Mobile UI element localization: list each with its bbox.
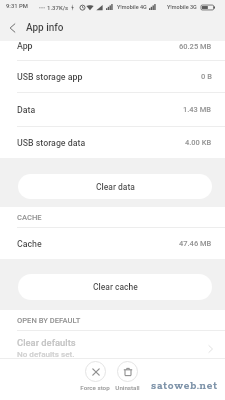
button[interactable]: Clear cache xyxy=(18,274,212,300)
staticText: USB storage data xyxy=(17,138,86,148)
staticText: USB storage app xyxy=(17,72,83,82)
staticText: Data xyxy=(17,105,36,115)
staticText: Cache xyxy=(17,239,42,249)
button[interactable]: USB storage app xyxy=(0,61,225,92)
button[interactable]: Cache xyxy=(0,228,225,259)
button[interactable]: Clear defaults xyxy=(0,331,225,358)
staticText: 4.00 KB xyxy=(185,138,212,147)
staticText: CACHE xyxy=(17,213,42,222)
button[interactable]: Data xyxy=(0,93,225,126)
button[interactable]: Uninstall xyxy=(107,361,147,391)
button[interactable]: App xyxy=(0,41,225,60)
button[interactable]: USB storage data xyxy=(0,127,225,158)
staticText: Clear data xyxy=(96,182,135,192)
staticText: 47.46 MB xyxy=(179,239,212,248)
staticText: Clear defaults xyxy=(17,337,76,348)
staticText: 9:31 PM xyxy=(6,3,28,10)
staticText: satoweb.net xyxy=(151,380,218,393)
staticText: App xyxy=(17,41,33,51)
staticText: Force stop xyxy=(80,384,110,391)
staticText: 1.37K/s xyxy=(47,4,69,11)
button[interactable]: Force stop xyxy=(75,361,115,391)
staticText: No defaults set. xyxy=(17,349,75,358)
staticText: 0 B xyxy=(201,72,212,81)
staticText: Uninstall xyxy=(115,384,140,391)
staticText: Clear cache xyxy=(93,282,138,292)
staticText: OPEN BY DEFAULT xyxy=(17,316,81,325)
staticText: Y!mobile 4G xyxy=(117,4,147,10)
staticText: 60.25 MB xyxy=(179,42,212,51)
staticText: App info xyxy=(26,22,64,34)
button[interactable]: Clear data xyxy=(18,174,212,199)
staticText: Y!mobile 3G xyxy=(167,4,197,10)
button[interactable]: Back xyxy=(0,14,25,41)
staticText: 1.43 MB xyxy=(183,105,212,114)
